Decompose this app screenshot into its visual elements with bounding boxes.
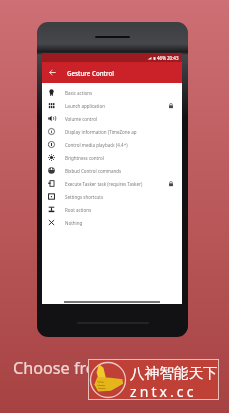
staticText: Root actions	[65, 207, 174, 213]
button[interactable]: Launch application	[42, 99, 182, 112]
button[interactable]: Bixbud Control commands	[42, 164, 182, 177]
button[interactable]: Back	[46, 66, 59, 79]
staticText: Choose from more than 50	[13, 357, 218, 379]
button[interactable]: Control media playback (4.4+)	[42, 138, 182, 151]
button[interactable]: Settings shortcuts	[42, 190, 182, 203]
button[interactable]: Root actions	[42, 203, 182, 216]
button[interactable]: Display information (TimeZone ap	[42, 125, 182, 138]
button[interactable]: Nothing	[42, 216, 182, 229]
staticText: Bixbud Control commands	[65, 168, 174, 174]
button[interactable]: Brightness control	[42, 151, 182, 164]
staticText: Control media playback (4.4+)	[65, 142, 174, 148]
button[interactable]: Execute Tasker task (requires Tasker)	[42, 177, 182, 190]
staticText: 46%	[157, 55, 166, 61]
staticText: Volume control	[65, 116, 174, 122]
staticText: Launch application	[65, 103, 168, 109]
staticText: Nothing	[65, 220, 174, 226]
staticText: zntx.cc	[130, 382, 197, 401]
staticText: 20:43	[167, 55, 179, 61]
staticText: Basic actions	[65, 90, 174, 96]
staticText: Settings shortcuts	[65, 194, 174, 200]
staticText: Execute Tasker task (requires Tasker)	[65, 181, 168, 187]
button[interactable]: Basic actions	[42, 86, 182, 99]
button[interactable]: Volume control	[42, 112, 182, 125]
staticText: Display information (TimeZone ap	[65, 129, 174, 135]
staticText: Brightness control	[65, 155, 174, 161]
staticText: Gesture Control	[67, 69, 114, 77]
staticText: 八神智能天下	[130, 364, 218, 382]
